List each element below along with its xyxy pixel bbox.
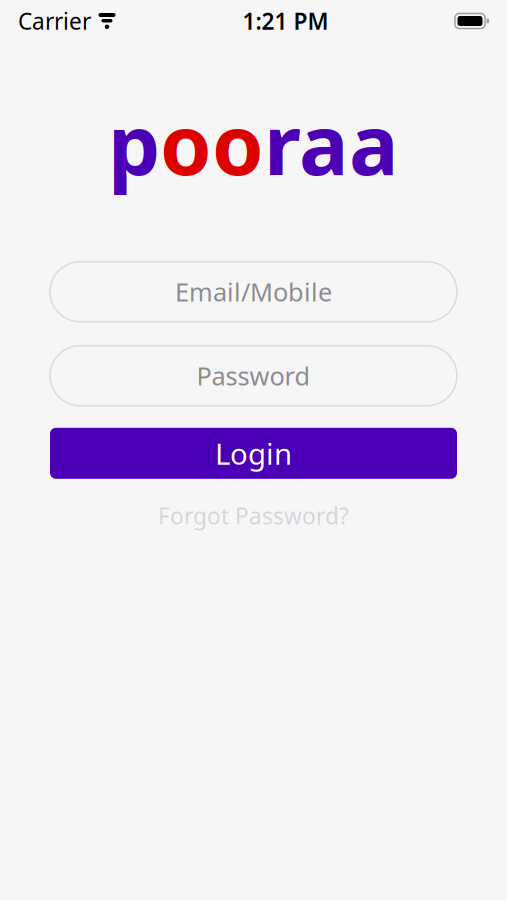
staticText: p (108, 88, 160, 198)
staticText: Login (215, 434, 292, 473)
staticText: Carrier (18, 6, 91, 36)
staticText: Password (196, 359, 310, 393)
staticText: oo (160, 88, 264, 198)
staticText: 1:21 PM (242, 6, 328, 36)
staticText: Forgot Password? (158, 501, 349, 531)
button[interactable]: Password (50, 346, 457, 406)
staticText: Email/Mobile (175, 275, 332, 309)
staticText: raa (264, 88, 399, 198)
button[interactable]: Email/Mobile (50, 262, 457, 322)
button[interactable]: Forgot Password? (50, 495, 457, 537)
button[interactable]: Login (50, 428, 457, 479)
